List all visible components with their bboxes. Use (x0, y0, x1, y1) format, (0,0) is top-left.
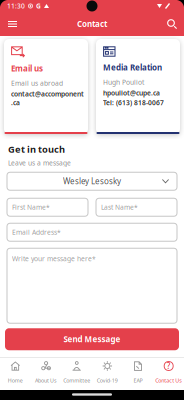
button[interactable]: Email us (4, 39, 88, 134)
staticText: Contact (77, 19, 107, 29)
staticText: Get in touch (8, 143, 65, 155)
button[interactable]: Home (0, 358, 31, 390)
staticText: Email us (11, 63, 43, 74)
staticText: 11:30 (7, 2, 25, 10)
staticText: hpouliot@cupe.ca (103, 88, 160, 97)
button[interactable]: Send Message (5, 328, 179, 350)
staticText: Email us abroad (11, 79, 63, 87)
staticText: Wesley Lesosky (63, 176, 121, 186)
staticText: ? (167, 360, 171, 371)
staticText: Committee (63, 377, 90, 384)
button[interactable]: About Us (31, 358, 61, 390)
staticText: Tel: (613) 818-0067 (103, 98, 164, 107)
staticText: Contact Us (155, 377, 182, 384)
staticText: contact@accomponent .ca (11, 89, 84, 107)
button[interactable]: Covid-19 (92, 358, 123, 390)
button[interactable]: Committee (61, 358, 92, 390)
button[interactable]: EAP (123, 358, 153, 390)
staticText: Send Message (63, 334, 120, 344)
staticText: Media Relation (103, 62, 162, 73)
button[interactable]: Recipient selector (7, 172, 177, 190)
staticText: EAP (133, 377, 142, 384)
button[interactable]: Search (162, 14, 182, 34)
staticText: G (36, 2, 41, 10)
button[interactable]: Media Relation (96, 39, 180, 134)
button[interactable]: ? (153, 358, 184, 390)
staticText: About Us (35, 377, 57, 384)
staticText: First Name* (12, 203, 50, 212)
staticText: Home (8, 377, 23, 384)
staticText: Covid-19 (97, 377, 118, 384)
staticText: Last Name* (101, 203, 138, 212)
button[interactable]: Menu (2, 14, 23, 33)
staticText: Write your message here* (12, 254, 96, 263)
staticText: Leave us a message (8, 158, 71, 167)
staticText: Email Address* (12, 228, 61, 237)
staticText: Hugh Pouliot (103, 78, 144, 86)
